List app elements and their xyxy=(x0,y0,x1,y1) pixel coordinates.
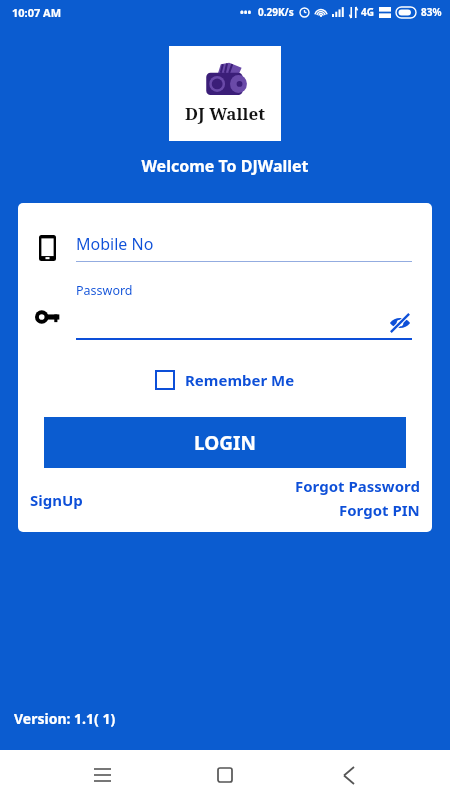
staticText: DJ Wallet xyxy=(185,102,266,125)
staticText: Welcome To DJWallet xyxy=(0,155,450,177)
button[interactable]: Forgot Password xyxy=(295,476,420,496)
staticText: LOGIN xyxy=(194,430,256,456)
button[interactable]: Remember Me xyxy=(151,368,299,392)
button[interactable]: Menu xyxy=(80,753,124,797)
button[interactable]: Home xyxy=(203,753,247,797)
staticText: ••• xyxy=(240,5,252,19)
button[interactable]: Mobile No xyxy=(18,233,432,262)
staticText: 4G xyxy=(361,5,374,19)
button[interactable]: Forgot PIN xyxy=(339,500,420,520)
staticText: Version: 1.1( 1) xyxy=(14,709,116,728)
staticText: Mobile No xyxy=(76,233,154,255)
button[interactable]: Show password xyxy=(388,311,412,335)
button[interactable]: Back xyxy=(327,753,371,797)
button[interactable]: Password xyxy=(18,282,432,340)
button[interactable]: LOGIN xyxy=(44,417,406,468)
staticText: Password xyxy=(76,282,133,299)
staticText: 0.29K/s xyxy=(258,5,294,19)
button[interactable]: SignUp xyxy=(30,490,83,510)
staticText: Remember Me xyxy=(185,370,295,390)
staticText: 83% xyxy=(421,5,442,19)
staticText: 10:07 AM xyxy=(12,5,62,20)
